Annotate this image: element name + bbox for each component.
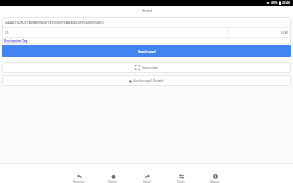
staticText: About [210,180,220,183]
button[interactable]: Home [96,163,130,183]
other: Home [111,174,116,179]
button[interactable]: Send now! [2,45,291,57]
other: Tools [179,174,184,179]
other: About [213,174,218,179]
staticText: GAAA5CO2RUCT4MBMXNHGFCKTVSXSVYXAMAVKEGXP… [5,21,104,25]
button[interactable]: Like this app? Donate! [2,75,291,86]
button[interactable]: Receive [62,163,96,183]
staticText: Home [108,180,118,183]
staticText: Send now! [138,49,156,54]
staticText: Send [143,180,151,183]
other: Receive [77,174,82,179]
button[interactable]: Tools [164,163,198,183]
staticText: Scan code [142,65,159,70]
button[interactable]: Scan code [2,62,291,73]
staticText: Like this app? Donate! [133,79,164,83]
button[interactable]: Send [130,163,164,183]
staticText: 25 [5,31,9,35]
staticText: 40% [271,1,278,5]
button[interactable]: About [198,163,232,183]
staticText: XLM [281,30,288,35]
other: Send [145,174,150,179]
staticText: Tools [177,180,185,183]
staticText: Receive [73,180,85,183]
staticText: 22:40 [282,1,291,5]
staticText: Send [142,8,152,14]
button[interactable]: Destination Tag [4,39,28,43]
